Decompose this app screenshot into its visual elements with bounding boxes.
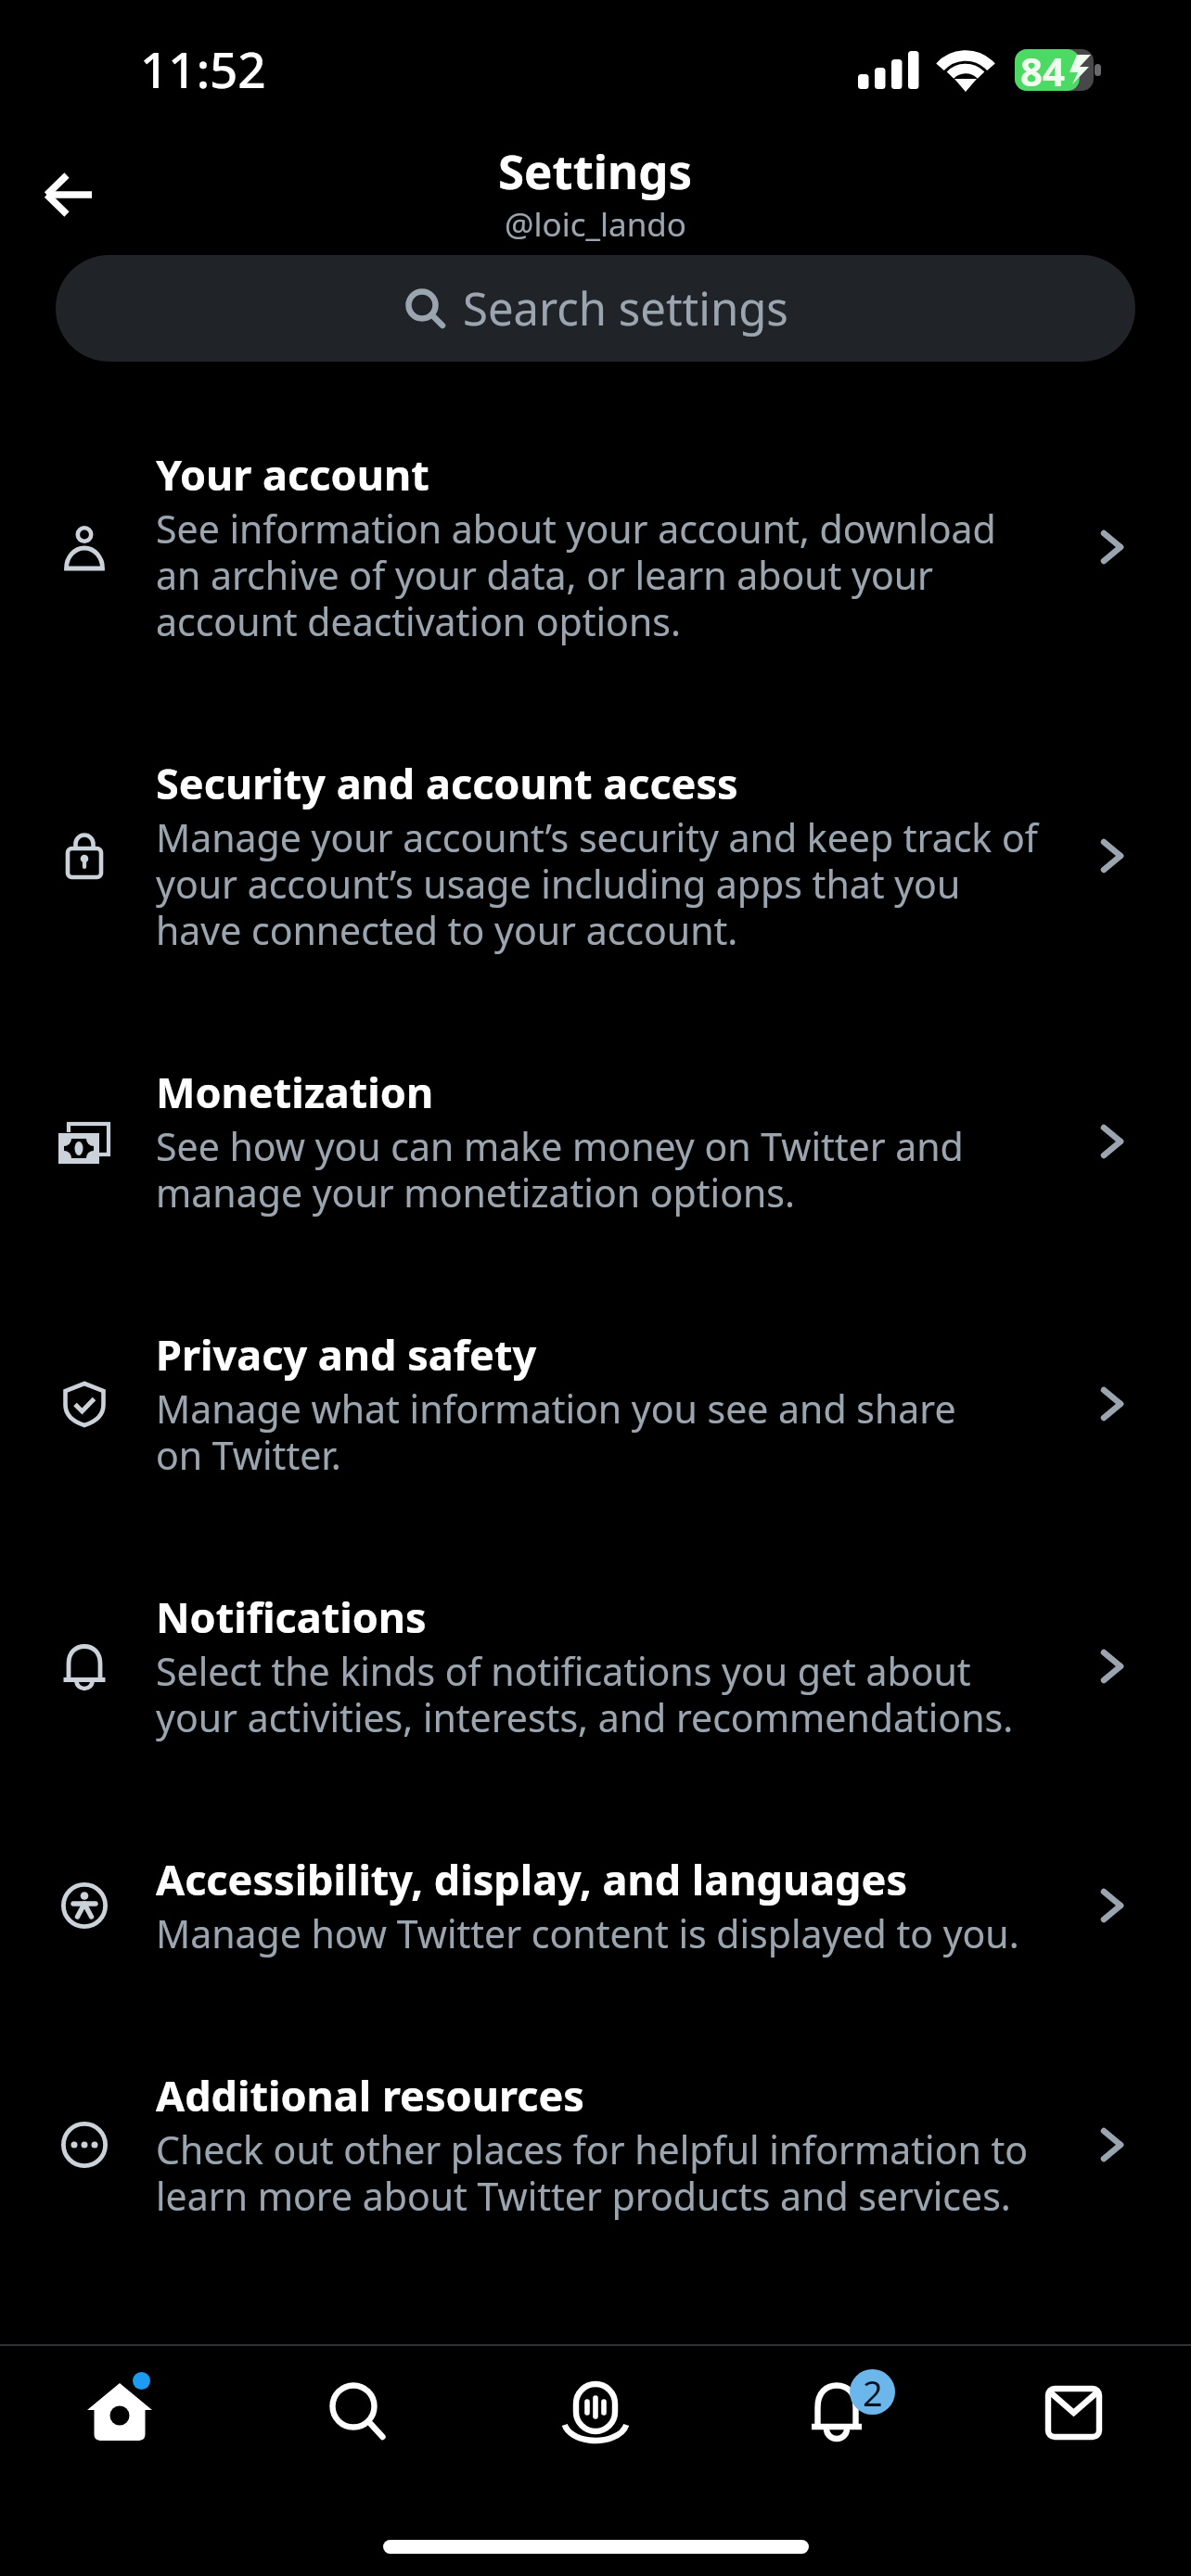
- button[interactable]: Back: [13, 151, 98, 236]
- button[interactable]: Messages: [953, 2346, 1191, 2480]
- staticText: Select the kinds of notifications you ge…: [156, 1645, 1014, 1743]
- staticText: 11:52: [140, 35, 266, 102]
- button[interactable]: Spaces: [476, 2346, 714, 2480]
- staticText: Accessibility, display, and languages: [156, 1851, 908, 1907]
- staticText: See how you can make money on Twitter an…: [156, 1120, 964, 1218]
- button[interactable]: Home: [0, 2346, 237, 2480]
- staticText: Check out other places for helpful infor…: [156, 2123, 1029, 2222]
- staticText: Additional resources: [156, 2067, 584, 2123]
- staticText: Manage what information you see and shar…: [156, 1383, 956, 1481]
- staticText: Your account: [156, 446, 429, 503]
- staticText: Security and account access: [156, 755, 738, 811]
- button[interactable]: Monetization: [0, 1011, 1191, 1273]
- button[interactable]: Security and account access: [0, 702, 1191, 1011]
- button[interactable]: Accessibility, display, and languages: [0, 1798, 1191, 2014]
- staticText: Settings: [498, 138, 693, 202]
- staticText: Monetization: [156, 1064, 434, 1120]
- button[interactable]: Search settings: [56, 255, 1135, 362]
- staticText: @loic_lando: [505, 202, 687, 247]
- staticText: Manage your account’s security and keep …: [156, 811, 1038, 956]
- staticText: 2: [863, 2369, 883, 2414]
- button[interactable]: Notifications: [714, 2346, 953, 2480]
- staticText: Notifications: [156, 1588, 427, 1645]
- staticText: Privacy and safety: [156, 1326, 537, 1383]
- staticText: Manage how Twitter content is displayed …: [156, 1907, 1019, 1959]
- staticText: See information about your account, down…: [156, 503, 996, 647]
- button[interactable]: Your account: [0, 393, 1191, 702]
- button[interactable]: Search: [237, 2346, 476, 2480]
- staticText: Search settings: [463, 277, 788, 339]
- button[interactable]: Additional resources: [0, 2014, 1191, 2276]
- staticText: 84: [1020, 45, 1066, 97]
- button[interactable]: Notifications: [0, 1536, 1191, 1798]
- button[interactable]: Privacy and safety: [0, 1273, 1191, 1536]
